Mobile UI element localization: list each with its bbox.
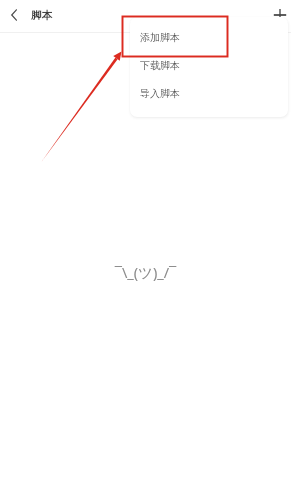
staticText: ¯\_(ツ)_/¯: [0, 262, 291, 282]
staticText: 添加脚本: [140, 31, 180, 44]
button[interactable]: 下载脚本: [130, 51, 288, 79]
staticText: 下载脚本: [140, 59, 180, 72]
button[interactable]: Add script: [268, 3, 291, 27]
staticText: 脚本: [31, 9, 52, 22]
button[interactable]: Back: [2, 3, 26, 27]
button[interactable]: 导入脚本: [130, 79, 288, 107]
button[interactable]: 添加脚本: [130, 23, 288, 51]
staticText: 导入脚本: [140, 87, 180, 100]
